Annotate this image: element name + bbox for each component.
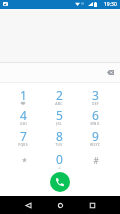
staticText: 2 — [56, 87, 63, 103]
button[interactable]: 1 — [5, 84, 41, 105]
staticText: 7 — [20, 128, 27, 144]
button[interactable]: 7 — [5, 125, 41, 146]
staticText: 6 — [92, 107, 99, 123]
button[interactable]: Home — [52, 196, 68, 214]
staticText: WXYZ — [90, 142, 100, 147]
staticText: 0 — [56, 151, 63, 167]
button[interactable]: 4 — [5, 104, 41, 125]
button[interactable]: 2 — [41, 84, 77, 105]
staticText: DEF — [92, 101, 99, 106]
button[interactable]: Recent apps — [84, 196, 100, 214]
staticText: 3 — [92, 87, 99, 103]
staticText: MNO — [90, 121, 100, 126]
staticText: 4 — [20, 107, 27, 123]
button[interactable]: 8 — [41, 125, 77, 146]
button[interactable]: 6 — [77, 104, 113, 125]
button[interactable]: 5 — [41, 104, 77, 125]
button[interactable]: Call — [50, 172, 70, 192]
staticText: 5 — [56, 107, 63, 123]
button[interactable]: 3 — [77, 84, 113, 105]
button[interactable]: * — [5, 148, 41, 169]
button[interactable]: 9 — [77, 125, 113, 146]
staticText: 9 — [92, 128, 99, 144]
staticText: JKL — [56, 121, 62, 126]
staticText: * — [22, 156, 27, 167]
button[interactable]: Backspace — [103, 65, 118, 79]
staticText: 19:30 — [104, 1, 117, 8]
staticText: ABC — [55, 101, 63, 106]
staticText: GHI — [20, 121, 27, 126]
staticText: PQRS — [18, 142, 28, 147]
button[interactable]: # — [77, 148, 113, 169]
staticText: + — [58, 165, 61, 170]
staticText: 1 — [20, 87, 27, 103]
staticText: # — [93, 155, 99, 166]
button[interactable]: Back — [20, 196, 36, 214]
button[interactable]: 0 — [41, 148, 77, 169]
staticText: TUV — [55, 142, 63, 147]
staticText: 8 — [56, 128, 63, 144]
